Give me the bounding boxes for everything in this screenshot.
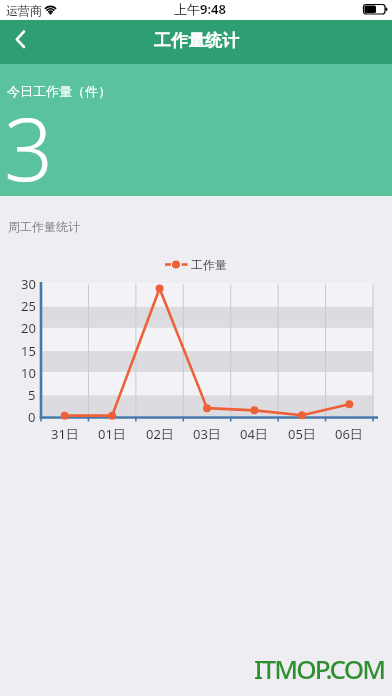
staticText: 04日 — [240, 425, 268, 442]
staticText: 20 — [21, 319, 36, 337]
staticText: 02日 — [146, 425, 174, 442]
staticText: 15 — [21, 342, 36, 360]
staticText: ITMOP.COM — [254, 651, 385, 683]
staticText: 06日 — [335, 425, 363, 442]
staticText: 01日 — [98, 425, 126, 442]
staticText: 3 — [4, 89, 54, 185]
staticText: 工作量统计 — [154, 30, 239, 51]
staticText: 5 — [28, 386, 36, 404]
staticText: 0 — [28, 408, 36, 426]
staticText: 03日 — [193, 425, 221, 442]
staticText: 30 — [21, 275, 36, 293]
staticText: 31日 — [51, 425, 79, 442]
staticText: 25 — [21, 297, 36, 315]
staticText: 周工作量统计 — [8, 219, 80, 234]
button[interactable] — [0, 20, 44, 64]
staticText: 运营商 — [6, 3, 42, 18]
staticText: 上午9:48 — [174, 0, 226, 18]
staticText: 今日工作量（件） — [7, 83, 111, 99]
staticText: 10 — [21, 364, 36, 382]
staticText: 工作量 — [191, 257, 227, 272]
staticText: 05日 — [288, 425, 316, 442]
